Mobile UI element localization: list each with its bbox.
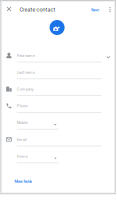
staticText: Create contact [19,7,55,13]
button[interactable]: Expand name fields [104,53,113,62]
staticText: Email [17,137,27,142]
button[interactable]: Close [2,2,15,15]
button[interactable]: Phone type [51,121,59,129]
staticText: Save [91,8,99,12]
button[interactable]: Save [88,5,102,14]
staticText: Mobile [17,120,28,125]
staticText: More fields [14,179,32,184]
button[interactable]: More fields [12,177,34,186]
button[interactable]: Add photo [50,20,65,35]
button[interactable]: Email type [51,154,59,162]
staticText: Phone [17,104,28,108]
staticText: Company [17,87,34,91]
staticText: Home [17,154,28,159]
staticText: Last name [17,70,35,75]
staticText: First name [17,53,35,58]
button[interactable]: More options [104,3,116,16]
